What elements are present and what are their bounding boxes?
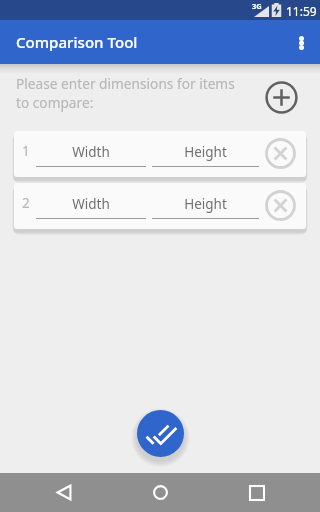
button[interactable]: Remove item — [265, 138, 296, 169]
staticText: 11:59 — [286, 3, 317, 19]
button[interactable]: Compare — [137, 410, 184, 457]
button[interactable]: Back — [40, 476, 88, 509]
staticText: Height — [152, 143, 259, 161]
staticText: 1 — [22, 142, 30, 160]
button[interactable]: More options — [273, 20, 317, 64]
staticText: Please enter dimensions for items to com… — [16, 74, 235, 112]
button[interactable]: 2 — [14, 183, 306, 229]
button[interactable]: Remove item — [265, 190, 296, 221]
staticText: 2 — [22, 194, 30, 212]
button[interactable]: Home — [136, 476, 184, 509]
staticText: Width — [36, 195, 146, 213]
staticText: Width — [36, 143, 146, 161]
staticText: Height — [152, 195, 259, 213]
button[interactable]: Recents — [233, 476, 281, 509]
button[interactable]: 1 — [14, 131, 306, 177]
staticText: Comparison Tool — [16, 32, 138, 53]
staticText: 3G — [252, 1, 262, 11]
button[interactable]: Add item — [262, 78, 300, 116]
